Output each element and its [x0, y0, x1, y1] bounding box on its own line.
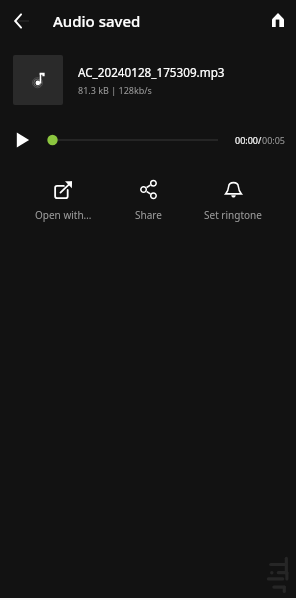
staticText: Audio saved: [53, 11, 141, 31]
staticText: 00:05: [262, 134, 286, 146]
staticText: AC_20240128_175309.mp3: [78, 64, 225, 80]
button[interactable]: Set ringtone: [191, 176, 275, 226]
button[interactable]: Play: [10, 126, 38, 154]
staticText: 00:00/: [235, 134, 262, 146]
button[interactable]: Home: [263, 7, 291, 35]
staticText: Open with…: [35, 208, 92, 222]
staticText: Share: [135, 208, 162, 222]
staticText: 81.3 kB | 128kb/s: [78, 84, 152, 96]
button[interactable]: Back: [4, 5, 36, 37]
staticText: Set ringtone: [204, 208, 262, 222]
button[interactable]: Share: [106, 176, 190, 226]
button[interactable]: Open with…: [21, 176, 105, 226]
